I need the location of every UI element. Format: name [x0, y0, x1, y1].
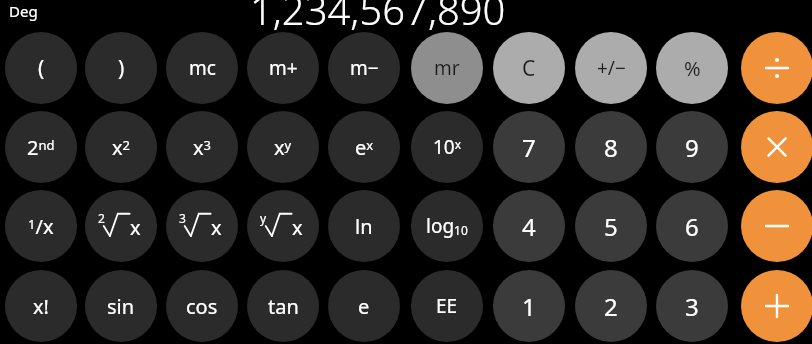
staticText: ex — [355, 134, 374, 161]
button[interactable]: mr — [411, 32, 483, 104]
staticText: mr — [434, 55, 460, 81]
staticText: x — [292, 214, 303, 241]
staticText: % — [684, 55, 701, 82]
button[interactable]: Plus — [741, 270, 812, 342]
button[interactable]: ) — [85, 32, 157, 104]
button[interactable]: 2 root of x — [85, 190, 157, 262]
button[interactable]: ( — [5, 32, 77, 104]
staticText: mc — [189, 55, 216, 81]
staticText: 4 — [522, 210, 536, 243]
staticText: 10x — [433, 134, 462, 160]
staticText: y — [260, 210, 267, 226]
staticText: 3 — [179, 210, 186, 226]
button[interactable]: 1 — [493, 270, 565, 342]
staticText: 1 — [522, 290, 536, 323]
button[interactable]: x3 — [166, 111, 238, 183]
button[interactable]: Minus — [741, 190, 812, 262]
button[interactable]: log10 — [411, 190, 483, 262]
staticText: Deg — [9, 1, 38, 21]
staticText: 6 — [685, 210, 699, 243]
staticText: x2 — [112, 134, 131, 161]
staticText: 2 — [98, 210, 105, 226]
button[interactable]: % — [656, 32, 728, 104]
staticText: ( — [38, 54, 45, 83]
button[interactable]: 8 — [575, 111, 647, 183]
button[interactable]: cos — [166, 270, 238, 342]
staticText: x3 — [193, 134, 212, 161]
button[interactable]: 10x — [411, 111, 483, 183]
staticText: +/− — [597, 55, 626, 81]
button[interactable]: sin — [85, 270, 157, 342]
staticText: ln — [355, 213, 373, 240]
staticText: 1,234,567,890 — [250, 0, 506, 36]
staticText: 8 — [604, 131, 618, 164]
button[interactable]: Divide — [741, 32, 812, 104]
button[interactable]: EE — [411, 270, 483, 342]
button[interactable]: Multiply — [741, 111, 812, 183]
staticText: xy — [274, 134, 292, 161]
staticText: log10 — [426, 213, 468, 239]
button[interactable]: y root of x — [247, 190, 319, 262]
button[interactable]: 1/x — [5, 190, 77, 262]
button[interactable]: e — [328, 270, 400, 342]
button[interactable]: 6 — [656, 190, 728, 262]
staticText: x — [211, 214, 222, 241]
button[interactable]: mc — [166, 32, 238, 104]
staticText: cos — [186, 293, 218, 320]
button[interactable]: 2 — [575, 270, 647, 342]
button[interactable]: C — [493, 32, 565, 104]
button[interactable]: m− — [328, 32, 400, 104]
button[interactable]: 2nd — [5, 111, 77, 183]
staticText: 1/x — [28, 213, 54, 240]
staticText: 2nd — [27, 134, 55, 161]
button[interactable]: tan — [247, 270, 319, 342]
button[interactable]: 3 root of x — [166, 190, 238, 262]
staticText: 3 — [685, 290, 699, 323]
button[interactable]: ex — [328, 111, 400, 183]
staticText: e — [358, 293, 370, 320]
staticText: x! — [33, 293, 49, 320]
button[interactable]: xy — [247, 111, 319, 183]
staticText: 5 — [604, 210, 618, 243]
button[interactable]: ln — [328, 190, 400, 262]
staticText: EE — [436, 293, 458, 319]
staticText: m− — [350, 55, 379, 81]
button[interactable]: +/− — [575, 32, 647, 104]
button[interactable]: 4 — [493, 190, 565, 262]
button[interactable]: 5 — [575, 190, 647, 262]
button[interactable]: 9 — [656, 111, 728, 183]
staticText: 2 — [604, 290, 618, 323]
button[interactable]: 7 — [493, 111, 565, 183]
staticText: sin — [107, 293, 135, 320]
button[interactable]: x2 — [85, 111, 157, 183]
button[interactable]: x! — [5, 270, 77, 342]
staticText: m+ — [269, 55, 298, 81]
staticText: ) — [118, 54, 125, 83]
staticText: 7 — [522, 131, 536, 164]
button[interactable]: m+ — [247, 32, 319, 104]
staticText: 9 — [685, 131, 699, 164]
staticText: C — [522, 54, 536, 83]
staticText: x — [130, 214, 141, 241]
button[interactable]: 3 — [656, 270, 728, 342]
staticText: tan — [268, 293, 299, 320]
